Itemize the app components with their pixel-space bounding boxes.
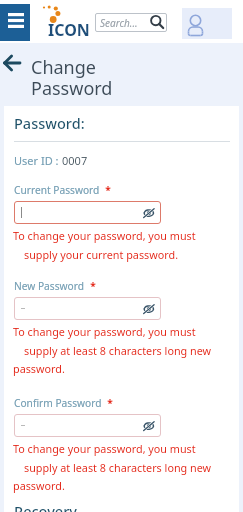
staticText: Confirm Password xyxy=(14,396,102,410)
staticText: Password: xyxy=(14,113,85,133)
button[interactable]: Search xyxy=(149,14,165,30)
staticText: supply at least 8 characters long new xyxy=(24,343,212,358)
button[interactable]: Account xyxy=(182,8,232,39)
button[interactable]: Show password xyxy=(140,300,157,317)
staticText: * xyxy=(100,183,111,197)
button[interactable] xyxy=(14,201,161,224)
staticText: To change your password, you must xyxy=(13,441,196,456)
staticText: password. xyxy=(13,361,65,376)
button[interactable] xyxy=(14,414,161,437)
staticText: * xyxy=(102,396,113,410)
staticText: Password xyxy=(31,76,113,101)
staticText: User ID : xyxy=(14,153,62,168)
staticText: To change your password, you must xyxy=(13,228,196,243)
staticText: Search... xyxy=(100,16,138,30)
staticText: supply at least 8 characters long new xyxy=(24,460,212,475)
staticText: New Password xyxy=(14,279,85,293)
button[interactable]: Search... xyxy=(95,13,167,32)
staticText: Current Password xyxy=(14,183,100,197)
staticText: Recovery xyxy=(14,501,77,512)
staticText: To change your password, you must xyxy=(13,324,196,339)
button[interactable]: Back xyxy=(3,54,21,72)
button[interactable]: Show password xyxy=(140,417,157,434)
button[interactable]: Menu xyxy=(0,4,30,41)
staticText: 0007 xyxy=(62,153,88,168)
button[interactable] xyxy=(14,297,161,320)
staticText: Change xyxy=(31,55,96,80)
staticText: password. xyxy=(13,478,65,493)
button[interactable]: Show password xyxy=(140,204,157,221)
staticText: supply your current password. xyxy=(24,247,179,262)
staticText: * xyxy=(85,279,96,293)
staticText: ICON xyxy=(48,19,90,41)
